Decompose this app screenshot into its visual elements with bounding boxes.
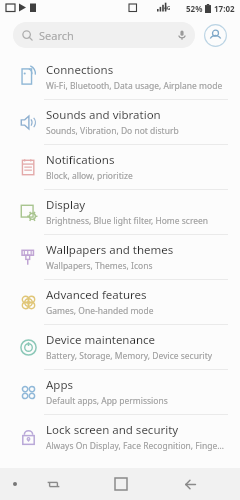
button[interactable]: Advanced features: [0, 280, 240, 324]
staticText: Games, One-handed mode: [46, 305, 154, 317]
staticText: Display: [46, 197, 86, 213]
button[interactable]: Apps: [0, 370, 240, 414]
staticText: Brightness, Blue light filter, Home scre…: [46, 215, 209, 227]
button[interactable]: Wallpapers and themes: [0, 235, 240, 279]
button[interactable]: Home: [109, 472, 133, 496]
staticText: Sounds and vibration: [46, 107, 161, 123]
staticText: Connections: [46, 62, 114, 78]
staticText: Battery, Storage, Memory, Device securit…: [46, 350, 213, 362]
button[interactable]: Notifications: [0, 145, 240, 189]
other: Voice search: [176, 29, 188, 41]
button[interactable]: Search: [13, 22, 195, 48]
staticText: 17:02: [214, 3, 235, 14]
button[interactable]: Lock screen and security: [0, 415, 240, 459]
staticText: Always On Display, Face Recognition, Fin…: [46, 440, 224, 452]
button[interactable]: Keyboard indicator: [8, 477, 22, 491]
staticText: Notifications: [46, 152, 115, 168]
staticText: 52%: [186, 3, 203, 14]
staticText: Wallpapers and themes: [46, 242, 174, 258]
staticText: Device maintenance: [46, 332, 156, 348]
button[interactable]: Display: [0, 190, 240, 234]
button[interactable]: Sounds and vibration: [0, 100, 240, 144]
button[interactable]: Account: [204, 24, 227, 47]
staticText: Wallpapers, Themes, Icons: [46, 260, 153, 272]
staticText: Apps: [46, 377, 74, 393]
staticText: Default apps, App permissions: [46, 395, 168, 407]
staticText: Block, allow, prioritize: [46, 170, 133, 182]
button[interactable]: Connections: [0, 54, 240, 99]
staticText: Advanced features: [46, 287, 147, 303]
staticText: Lock screen and security: [46, 422, 179, 438]
staticText: Wi-Fi, Bluetooth, Data usage, Airplane m…: [46, 80, 223, 92]
staticText: Search: [39, 28, 74, 43]
staticText: 4G: [164, 5, 171, 12]
staticText: Sounds, Vibration, Do not disturb: [46, 125, 179, 137]
button[interactable]: Recents: [42, 473, 64, 495]
button[interactable]: Device maintenance: [0, 325, 240, 369]
button[interactable]: Back: [178, 472, 202, 496]
